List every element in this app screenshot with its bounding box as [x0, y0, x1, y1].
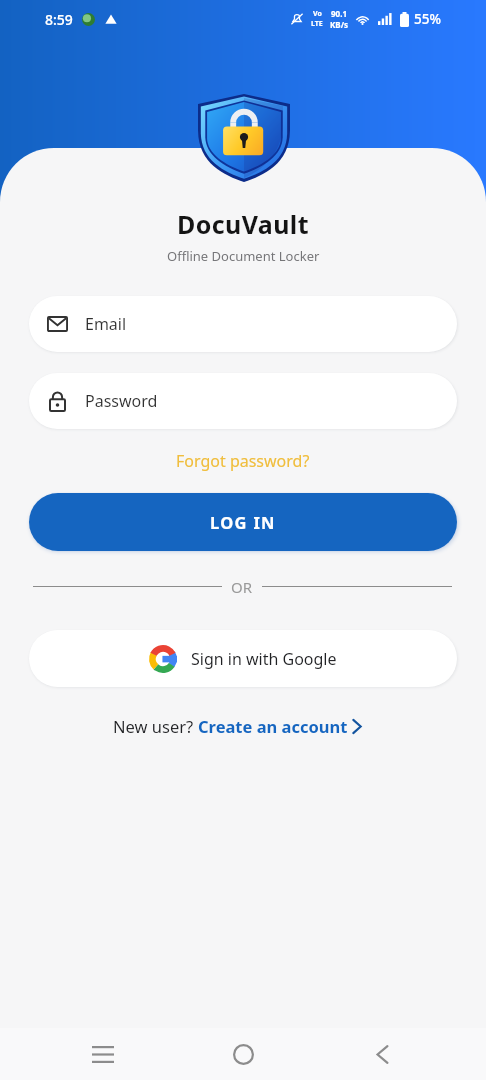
staticText: Password [85, 390, 158, 412]
button[interactable]: Home [211, 1028, 275, 1080]
staticText: 55% [414, 10, 441, 28]
staticText: Vo [313, 9, 322, 19]
staticText: Sign in with Google [191, 648, 337, 670]
staticText: Create an account [198, 715, 348, 737]
button[interactable]: Email [29, 296, 457, 352]
staticText: LTE [311, 19, 323, 29]
button[interactable]: Sign in with Google [29, 630, 457, 687]
button[interactable]: Password [29, 373, 457, 429]
staticText: 8:59 [45, 10, 73, 29]
staticText: KB/s [330, 19, 348, 30]
staticText: OR [231, 577, 253, 596]
staticText: LOG IN [210, 511, 276, 533]
button[interactable]: Back [350, 1028, 414, 1080]
button[interactable]: LOG IN [29, 493, 457, 551]
staticText: New user? [113, 715, 198, 737]
staticText: 90.1 [331, 8, 347, 19]
staticText: Email [85, 313, 127, 335]
button[interactable]: Forgot password? [168, 446, 318, 476]
button[interactable]: Create an account [198, 715, 362, 737]
button[interactable]: Recent apps [71, 1028, 135, 1080]
staticText: Forgot password? [176, 450, 310, 472]
staticText: DocuVault [177, 207, 309, 241]
staticText: Offline Document Locker [167, 247, 320, 265]
